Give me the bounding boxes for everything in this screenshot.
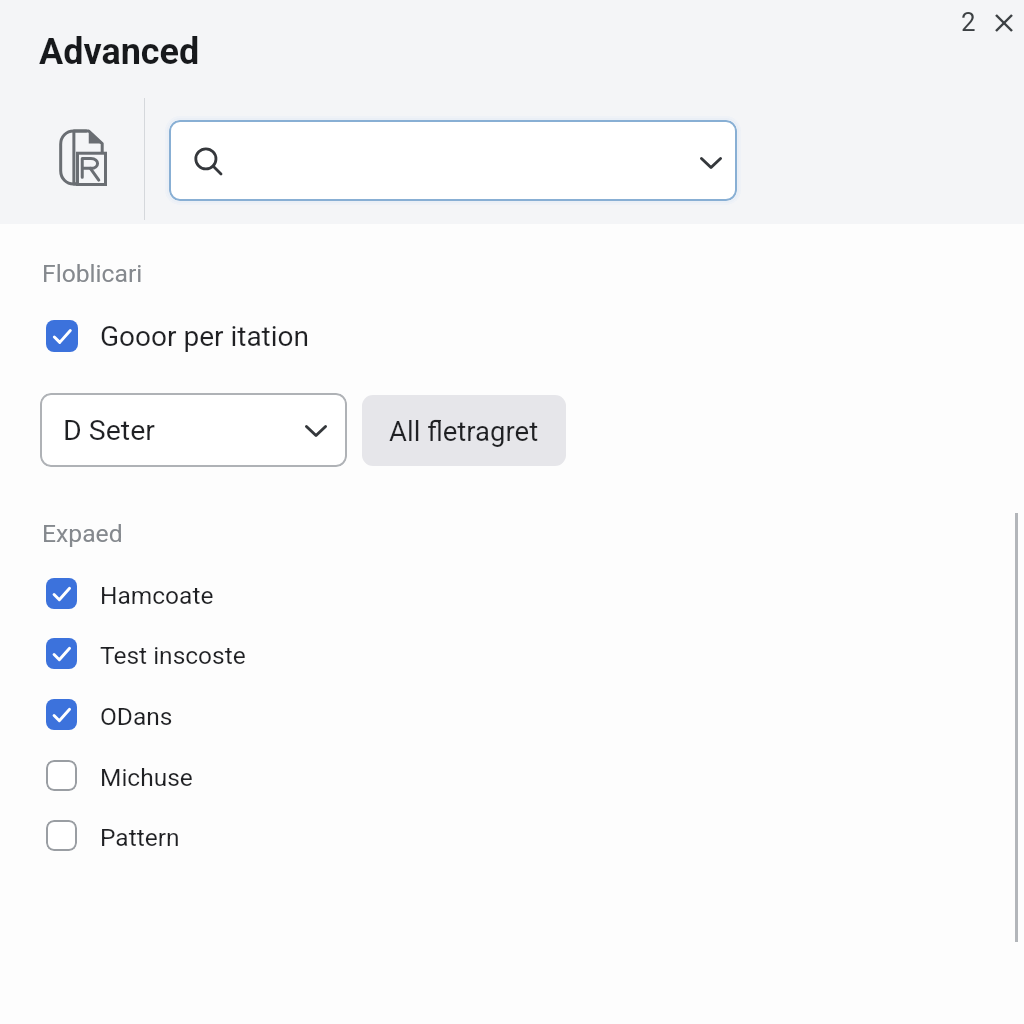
button[interactable]: Michuse	[46, 752, 446, 799]
button[interactable]: Search	[169, 120, 737, 201]
staticText: ODans	[100, 702, 173, 731]
staticText: Test inscoste	[100, 641, 246, 670]
button[interactable]: Document	[59, 129, 107, 186]
button[interactable]: Close	[986, 4, 1022, 42]
staticText: Gooor per itation	[100, 320, 310, 353]
staticText: Pattern	[100, 823, 180, 852]
staticText: D Seter	[63, 414, 155, 447]
staticText: 2	[961, 7, 976, 37]
button[interactable]: All fletragret	[362, 395, 566, 466]
staticText: All fletragret	[389, 415, 539, 447]
button[interactable]: ODans	[46, 691, 446, 738]
staticText: Michuse	[100, 763, 193, 792]
button[interactable]: Gooor per itation	[46, 312, 446, 360]
button[interactable]: 2 results	[950, 3, 986, 41]
button[interactable]: Hamcoate	[46, 570, 446, 617]
staticText: Floblicari	[42, 259, 143, 288]
button[interactable]: D Seter	[40, 393, 347, 467]
staticText: Expaed	[42, 519, 123, 548]
staticText: Hamcoate	[100, 581, 214, 610]
button[interactable]: Test inscoste	[46, 630, 446, 677]
staticText: Advanced	[39, 31, 200, 73]
button[interactable]: Pattern	[46, 812, 446, 859]
